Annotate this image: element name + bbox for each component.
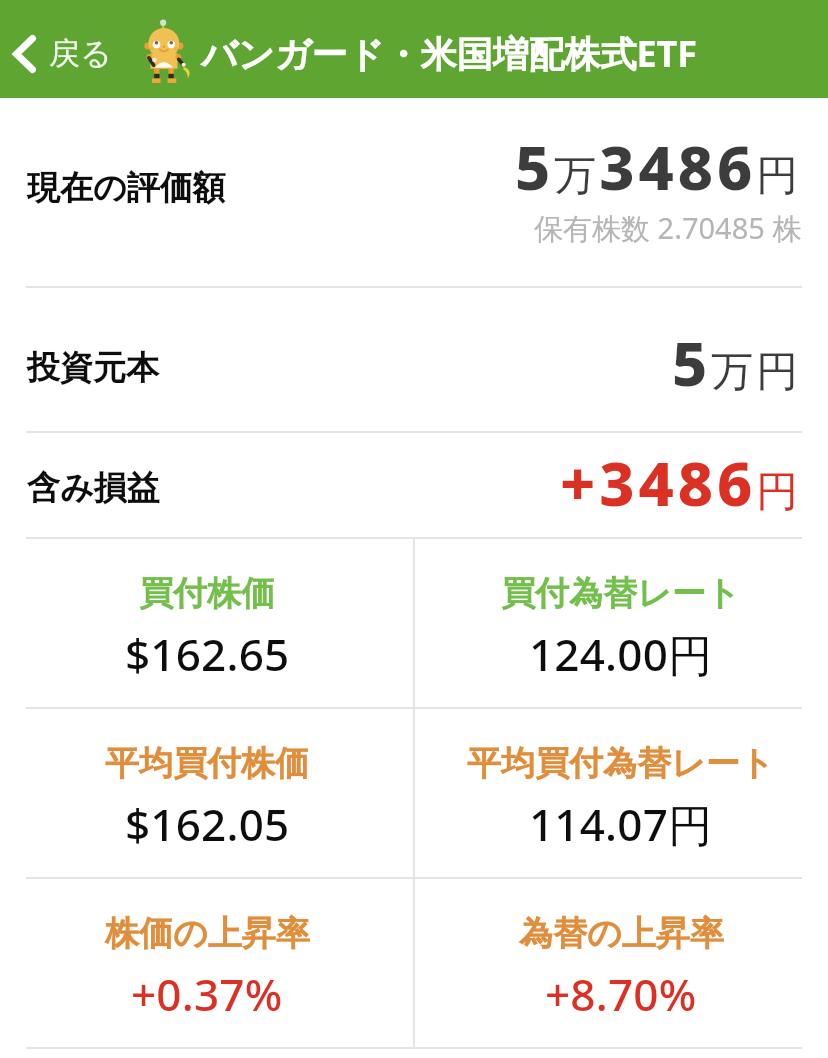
staticText: 株価の上昇率 xyxy=(105,912,310,955)
button[interactable]: 為替の上昇率 xyxy=(414,879,828,1047)
staticText: 114.07円 xyxy=(529,794,713,854)
staticText: 平均買付為替レート xyxy=(467,742,775,785)
staticText: 5万3486円 xyxy=(515,125,802,208)
staticText: +3486円 xyxy=(560,441,802,524)
staticText: $162.65 xyxy=(125,624,290,684)
button[interactable]: 現在の評価額 xyxy=(0,98,828,286)
button[interactable]: 平均買付株価 xyxy=(0,709,414,877)
staticText: $162.05 xyxy=(125,794,290,854)
other: 戻る xyxy=(13,35,36,73)
staticText: 5万円 xyxy=(672,321,802,404)
staticText: 含み損益 xyxy=(27,467,160,509)
button[interactable]: 買付株価 xyxy=(0,539,414,707)
staticText: 買付株価 xyxy=(139,572,275,615)
button[interactable]: 平均買付為替レート xyxy=(414,709,828,877)
button[interactable]: 買付為替レート xyxy=(414,539,828,707)
staticText: 平均買付株価 xyxy=(105,742,309,785)
staticText: 買付為替レート xyxy=(501,572,741,615)
staticText: 保有株数 2.70485 株 xyxy=(534,208,802,248)
button[interactable]: 含み損益 xyxy=(0,433,828,537)
staticText: 為替の上昇率 xyxy=(519,912,724,955)
staticText: バンガード・米国増配株式ETF xyxy=(201,29,698,78)
staticText: 124.00円 xyxy=(529,624,713,684)
button[interactable]: 戻る xyxy=(0,24,118,83)
staticText: 投資元本 xyxy=(27,347,159,389)
staticText: +8.70% xyxy=(545,964,697,1024)
staticText: 現在の評価額 xyxy=(27,167,226,209)
button[interactable]: 株価の上昇率 xyxy=(0,879,414,1047)
staticText: 戻る xyxy=(49,34,112,73)
staticText: +0.37% xyxy=(131,964,283,1024)
button[interactable]: 投資元本 xyxy=(0,288,828,431)
